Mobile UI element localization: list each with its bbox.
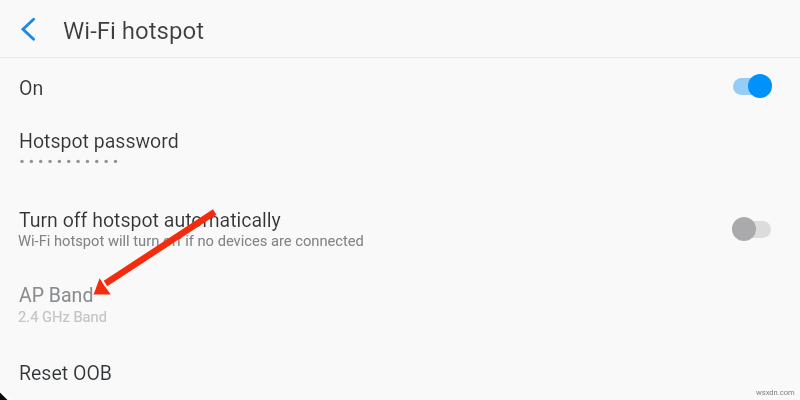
- button[interactable]: Turn off hotspot automatically: [0, 196, 800, 260]
- button[interactable]: Navigate up: [5, 6, 50, 51]
- staticText: Wi-Fi hotspot will turn off if no device…: [18, 232, 364, 249]
- button[interactable]: On: [0, 58, 800, 116]
- staticText: AP Band: [19, 284, 94, 307]
- staticText: wsxdn.com: [756, 388, 795, 397]
- button[interactable]: AP Band: [0, 272, 800, 334]
- staticText: Hotspot password: [19, 130, 179, 153]
- button[interactable]: Reset OOB: [0, 350, 800, 400]
- button[interactable]: Hotspot password: [0, 117, 800, 179]
- button[interactable]: Turn off hotspot automatically: [732, 217, 772, 241]
- staticText: On: [19, 77, 44, 100]
- button[interactable]: Hotspot enabled: [733, 74, 773, 98]
- staticText: 2.4 GHz Band: [18, 308, 107, 325]
- staticText: Wi-Fi hotspot: [63, 17, 204, 45]
- staticText: Reset OOB: [19, 362, 112, 385]
- staticText: Turn off hotspot automatically: [19, 209, 281, 232]
